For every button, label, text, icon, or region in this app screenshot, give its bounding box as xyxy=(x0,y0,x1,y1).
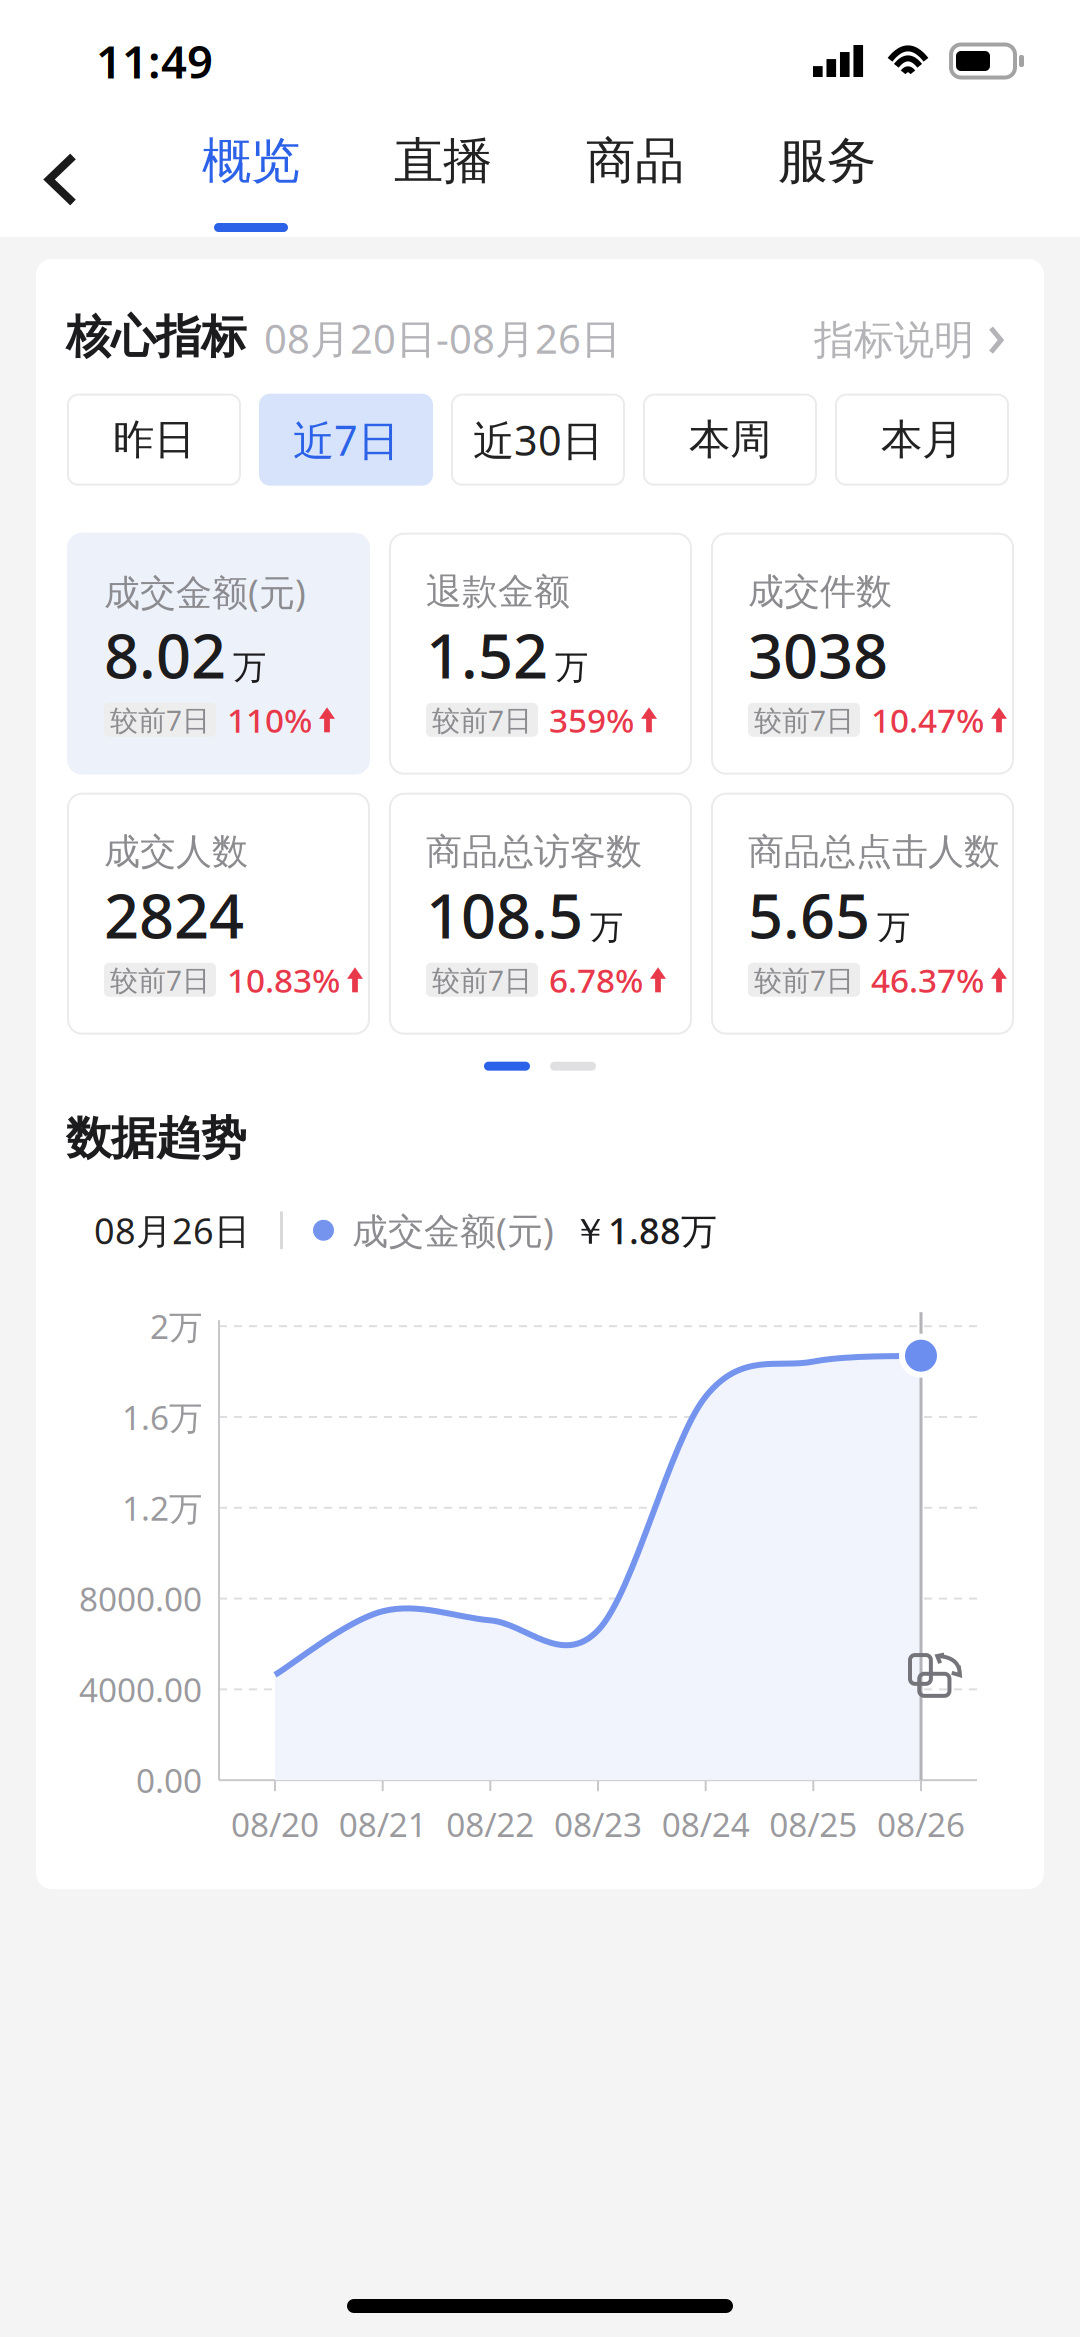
staticText: 1.6万 xyxy=(122,1395,202,1439)
button[interactable]: 指标说明 xyxy=(814,316,1004,365)
staticText: 成交金额(元) xyxy=(104,568,306,616)
staticText: 退款金额 xyxy=(426,570,570,614)
button[interactable]: 成交金额(元) xyxy=(68,534,369,774)
staticText: 46.37% xyxy=(871,958,984,1002)
staticText: 商品总点击人数 xyxy=(748,830,1000,874)
button[interactable]: 概览 xyxy=(166,122,336,237)
staticText: 5.65 xyxy=(748,874,870,955)
staticText: 万 xyxy=(877,907,910,948)
staticText: 359% xyxy=(549,698,634,742)
staticText: 11:49 xyxy=(96,31,213,91)
staticText: 08/26 xyxy=(877,1802,965,1846)
staticText: 数据趋势 xyxy=(66,1111,246,1166)
staticText: 较前7日 xyxy=(754,961,854,998)
staticText: 近30日 xyxy=(473,412,603,467)
staticText: 指标说明 xyxy=(814,316,974,365)
staticText: 较前7日 xyxy=(110,701,210,738)
staticText: 0.00 xyxy=(136,1758,202,1802)
staticText: 商品总访客数 xyxy=(426,830,642,874)
staticText: ￥1.88万 xyxy=(572,1206,717,1254)
staticText: 万 xyxy=(590,907,623,948)
button[interactable]: 本周 xyxy=(644,395,816,485)
staticText: 万 xyxy=(555,647,588,688)
staticText: 08/21 xyxy=(339,1802,427,1846)
staticText: 较前7日 xyxy=(432,961,532,998)
staticText: 8000.00 xyxy=(79,1576,202,1621)
staticText: 服务 xyxy=(778,131,876,191)
button[interactable]: 成交人数 xyxy=(68,794,369,1034)
staticText: 万 xyxy=(233,647,266,688)
staticText: 本周 xyxy=(689,414,771,465)
staticText: 10.83% xyxy=(227,958,340,1002)
staticText: 6.78% xyxy=(549,958,643,1002)
staticText: 商品 xyxy=(586,131,684,191)
staticText: 2824 xyxy=(104,874,244,955)
staticText: 本月 xyxy=(881,414,963,465)
staticText: 昨日 xyxy=(113,414,195,465)
staticText: 08/20 xyxy=(231,1802,319,1846)
button[interactable]: 服务 xyxy=(742,122,912,237)
staticText: 2万 xyxy=(150,1304,202,1348)
staticText: 概览 xyxy=(202,131,300,191)
staticText: 108.5 xyxy=(426,874,583,955)
staticText: 成交金额(元) xyxy=(352,1206,554,1254)
staticText: 08/23 xyxy=(554,1802,642,1846)
staticText: 08/22 xyxy=(446,1802,534,1846)
staticText: 直播 xyxy=(394,131,492,191)
staticText: 1.2万 xyxy=(122,1486,202,1530)
staticText: 110% xyxy=(227,698,312,742)
button[interactable]: 直播 xyxy=(358,122,528,237)
staticText: 8.02 xyxy=(104,614,226,695)
button[interactable]: 近7日 xyxy=(260,395,432,485)
button[interactable]: 本月 xyxy=(836,395,1008,485)
button[interactable]: Back xyxy=(0,122,122,237)
button[interactable]: 退款金额 xyxy=(390,534,691,774)
staticText: 4000.00 xyxy=(79,1667,202,1711)
button[interactable]: 成交件数 xyxy=(712,534,1013,774)
button[interactable]: 昨日 xyxy=(68,395,240,485)
staticText: 较前7日 xyxy=(110,961,210,998)
button[interactable]: 商品总访客数 xyxy=(390,794,691,1034)
staticText: 10.47% xyxy=(871,698,984,742)
staticText: 08/25 xyxy=(769,1802,857,1846)
staticText: 08/24 xyxy=(662,1802,750,1846)
staticText: 较前7日 xyxy=(754,701,854,738)
staticText: 1.52 xyxy=(426,614,548,695)
staticText: 近7日 xyxy=(293,412,399,467)
staticText: 核心指标 xyxy=(66,309,246,365)
button[interactable]: 商品 xyxy=(550,122,720,237)
button[interactable]: 商品总点击人数 xyxy=(712,794,1013,1034)
staticText: 08月26日 xyxy=(94,1206,250,1254)
staticText: 3038 xyxy=(748,614,888,695)
button[interactable]: Rotate chart xyxy=(62,1290,982,1856)
staticText: 较前7日 xyxy=(432,701,532,738)
staticText: 成交人数 xyxy=(104,830,248,874)
staticText: 08月20日-08月26日 xyxy=(264,312,621,365)
staticText: 成交件数 xyxy=(748,570,892,614)
button[interactable]: 近30日 xyxy=(452,395,624,485)
